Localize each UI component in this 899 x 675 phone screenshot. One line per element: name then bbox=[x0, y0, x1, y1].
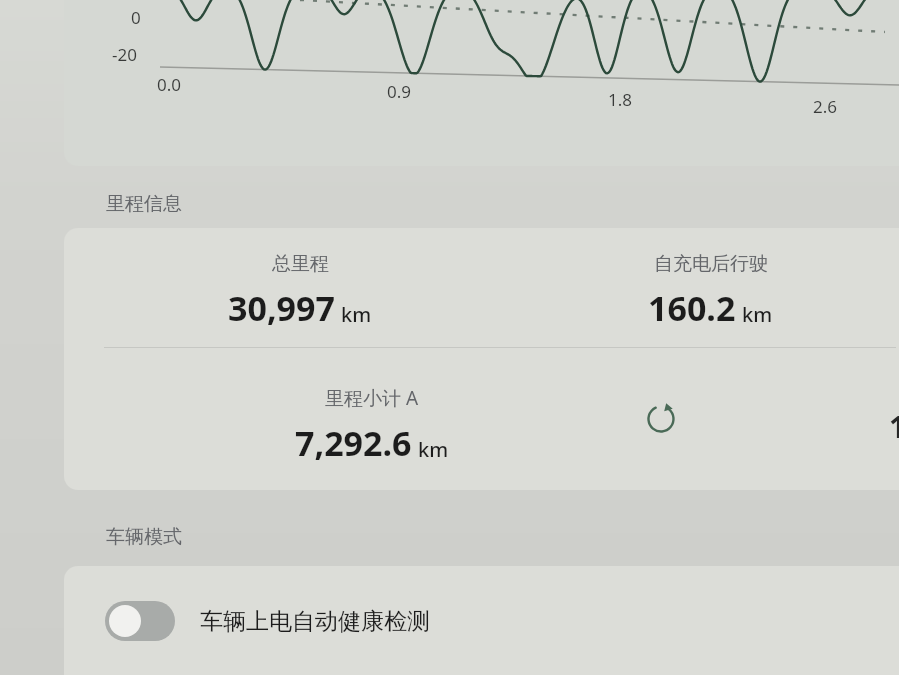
staticText: 7,292.6 bbox=[295, 420, 412, 466]
staticText: km bbox=[742, 301, 773, 328]
staticText: 0.0 bbox=[157, 73, 182, 96]
staticText: 车辆上电自动健康检测 bbox=[200, 607, 430, 636]
staticText: 里程信息 bbox=[106, 192, 182, 216]
staticText: 30,997 bbox=[228, 285, 335, 331]
staticText: -20 bbox=[112, 43, 137, 66]
staticText: 自充电后行驶 bbox=[654, 252, 768, 276]
button[interactable]: 里程小计 A bbox=[222, 385, 522, 471]
staticText: 160.2 bbox=[648, 285, 736, 331]
staticText: km bbox=[418, 436, 449, 463]
staticText: 总里程 bbox=[272, 252, 329, 276]
button[interactable]: 自充电后行驶 bbox=[560, 252, 860, 338]
staticText: km bbox=[341, 301, 372, 328]
button[interactable]: 总里程 bbox=[150, 252, 450, 338]
staticText: 0 bbox=[131, 6, 141, 29]
button[interactable]: Reset trip meter A bbox=[635, 393, 687, 445]
staticText: 1.8 bbox=[608, 88, 633, 111]
staticText: 1 bbox=[889, 406, 899, 447]
staticText: 车辆模式 bbox=[106, 525, 182, 549]
staticText: 0.9 bbox=[387, 80, 412, 103]
staticText: 2.6 bbox=[813, 95, 838, 118]
staticText: 里程小计 A bbox=[325, 385, 419, 411]
button[interactable]: 车辆上电自动健康检测 bbox=[64, 580, 899, 662]
